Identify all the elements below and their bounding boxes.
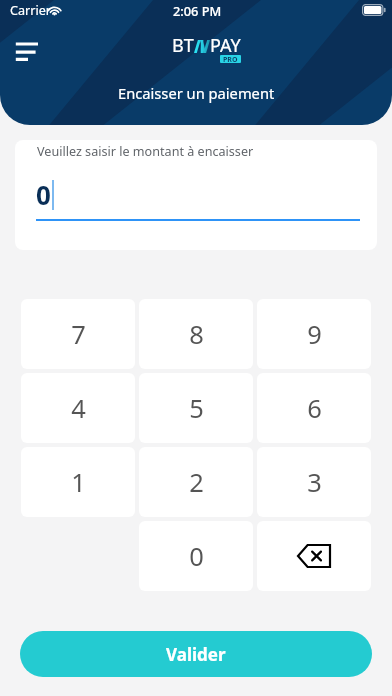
button[interactable]: 1 bbox=[21, 447, 135, 517]
staticText: 4 bbox=[71, 391, 86, 426]
button[interactable]: 8 bbox=[139, 299, 253, 369]
staticText: 5 bbox=[189, 391, 204, 426]
button[interactable]: Valider bbox=[20, 631, 372, 677]
staticText: 1 bbox=[71, 465, 86, 500]
button[interactable]: 3 bbox=[257, 447, 371, 517]
staticText: PAY bbox=[210, 33, 241, 58]
button[interactable]: 0 bbox=[139, 521, 253, 591]
staticText: 2:06 PM bbox=[173, 2, 222, 19]
button[interactable]: 5 bbox=[139, 373, 253, 443]
staticText: 6 bbox=[307, 391, 322, 426]
button[interactable]: 9 bbox=[257, 299, 371, 369]
staticText: BT bbox=[172, 33, 194, 58]
button[interactable]: Backspace bbox=[257, 521, 371, 591]
staticText: Veuillez saisir le montant à encaisser bbox=[37, 143, 254, 160]
staticText: 0 bbox=[36, 177, 51, 212]
button[interactable]: 6 bbox=[257, 373, 371, 443]
staticText: 0 bbox=[189, 539, 204, 574]
staticText: 7 bbox=[71, 317, 86, 352]
button[interactable]: 4 bbox=[21, 373, 135, 443]
button[interactable]: Menu bbox=[14, 36, 50, 72]
staticText: 2 bbox=[189, 465, 204, 500]
staticText: PRO bbox=[223, 55, 238, 63]
staticText: 9 bbox=[307, 317, 322, 352]
staticText: Carrier bbox=[10, 2, 51, 19]
staticText: 8 bbox=[189, 317, 204, 352]
button[interactable]: 7 bbox=[21, 299, 135, 369]
staticText: Valider bbox=[166, 643, 226, 666]
button[interactable]: 2 bbox=[139, 447, 253, 517]
staticText: 3 bbox=[307, 465, 322, 500]
staticText: Encaisser un paiement bbox=[118, 83, 275, 103]
